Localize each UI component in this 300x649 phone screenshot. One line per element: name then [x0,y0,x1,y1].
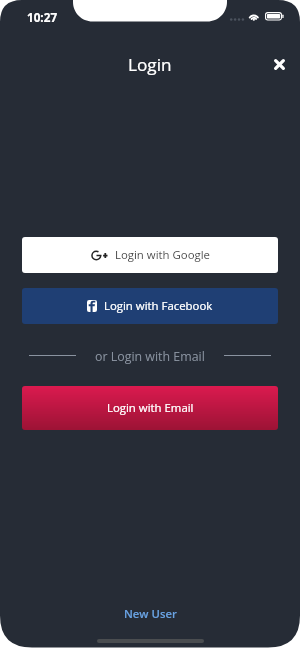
button[interactable]: Close [265,50,293,78]
staticText: or Login with Email [95,348,205,365]
button[interactable]: Login with Google [22,237,278,273]
button[interactable]: Login with Facebook [22,288,278,324]
staticText: Login with Google [115,247,210,263]
staticText: Login with Facebook [104,298,213,314]
staticText: Login [128,53,172,76]
button[interactable]: Login with Email [22,386,278,430]
staticText: Login with Email [107,400,194,416]
button[interactable]: New User [124,606,177,621]
staticText: New User [124,606,177,621]
staticText: 10:27 [27,9,58,25]
